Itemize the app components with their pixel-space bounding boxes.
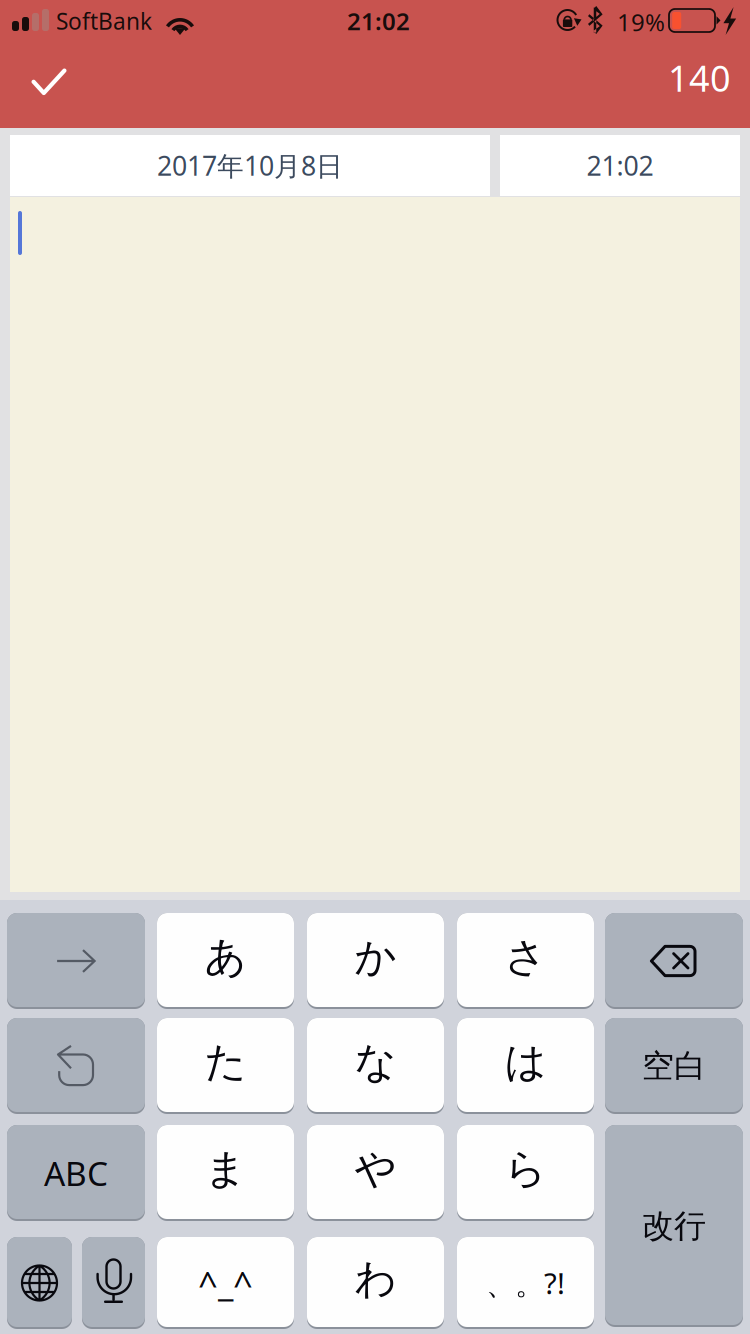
staticText: 2017年10月8日 xyxy=(157,148,343,183)
staticText: わ xyxy=(354,1254,396,1304)
staticText: 21:02 xyxy=(347,5,410,37)
button[interactable]: 2017年10月8日 xyxy=(10,135,490,196)
staticText: 21:02 xyxy=(586,148,653,183)
button[interactable] xyxy=(7,913,145,1009)
button[interactable]: な xyxy=(307,1018,444,1114)
button[interactable]: 改行 xyxy=(605,1125,743,1327)
staticText: あ xyxy=(204,932,246,982)
button[interactable]: や xyxy=(307,1125,444,1221)
staticText: 140 xyxy=(668,54,731,102)
button[interactable]: ら xyxy=(457,1125,594,1221)
button[interactable] xyxy=(82,1237,145,1329)
button[interactable]: ま xyxy=(157,1125,294,1221)
button[interactable]: さ xyxy=(457,913,594,1009)
staticText: は xyxy=(504,1037,546,1087)
staticText: や xyxy=(354,1144,396,1194)
button[interactable]: は xyxy=(457,1018,594,1114)
button[interactable]: 21:02 xyxy=(500,135,740,196)
button[interactable]: 、。?! xyxy=(457,1237,594,1329)
staticText: ま xyxy=(204,1144,246,1194)
staticText: 、。?! xyxy=(486,1263,565,1302)
staticText: SoftBank xyxy=(56,6,152,36)
staticText: 改行 xyxy=(642,1206,706,1246)
button[interactable]: 空白 xyxy=(605,1018,743,1114)
staticText: た xyxy=(204,1037,246,1087)
button[interactable] xyxy=(605,913,743,1009)
staticText: 19% xyxy=(617,6,665,38)
button[interactable]: Done xyxy=(0,40,96,128)
button[interactable]: た xyxy=(157,1018,294,1114)
button[interactable] xyxy=(7,1237,72,1329)
staticText: さ xyxy=(504,932,546,982)
staticText: 空白 xyxy=(642,1046,706,1086)
button[interactable]: 140 xyxy=(580,40,740,128)
staticText: な xyxy=(354,1037,396,1087)
button[interactable]: わ xyxy=(307,1237,444,1329)
staticText: か xyxy=(354,932,396,982)
button[interactable] xyxy=(7,1018,145,1114)
staticText: ABC xyxy=(44,1151,108,1195)
button[interactable]: ^_^ xyxy=(157,1237,294,1329)
button[interactable]: ABC xyxy=(7,1125,145,1221)
staticText: ^_^ xyxy=(198,1260,253,1306)
button[interactable]: か xyxy=(307,913,444,1009)
button[interactable]: あ xyxy=(157,913,294,1009)
staticText: ら xyxy=(504,1144,546,1194)
